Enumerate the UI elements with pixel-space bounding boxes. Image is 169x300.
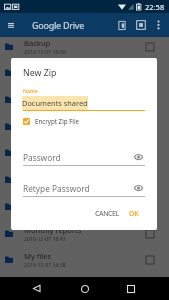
staticText: Retype Password <box>23 183 90 194</box>
button[interactable]: Select all <box>131 13 150 37</box>
staticText: Name <box>23 87 38 94</box>
staticText: 2016-12-07 16:38 <box>24 261 66 268</box>
staticText: Encrypt Zip File <box>35 117 80 125</box>
staticText: Google Drive <box>32 19 85 31</box>
button[interactable]: Select item <box>144 41 156 53</box>
button[interactable]: Select item <box>144 254 156 266</box>
button[interactable]: My files <box>0 246 169 273</box>
staticText: CANCEL <box>95 209 119 217</box>
button[interactable]: Select item <box>144 228 156 240</box>
button[interactable]: Home <box>75 277 95 300</box>
button[interactable]: Receipts <box>0 193 169 220</box>
staticText: 2016-12-07 16:50 <box>24 48 66 55</box>
staticText: 2016-12-07 16:44 <box>24 181 66 188</box>
staticText: My files <box>24 251 52 261</box>
button[interactable]: Documents shared <box>0 59 169 86</box>
button[interactable]: Show password <box>132 182 144 194</box>
staticText: 2016-12-07 16:48 <box>24 74 66 81</box>
staticText: Photos <box>24 118 49 128</box>
button[interactable]: Encrypt Zip File <box>23 116 80 126</box>
staticText: New Zip <box>23 67 57 79</box>
staticText: Monthly reports <box>24 225 82 235</box>
button[interactable]: New document <box>112 13 131 37</box>
button[interactable]: Backup <box>0 33 169 60</box>
staticText: 2016-12-07 16:47 <box>24 101 66 108</box>
button[interactable]: Back <box>26 277 46 300</box>
staticText: Backup <box>24 38 51 48</box>
button[interactable]: Projects <box>0 166 169 193</box>
button[interactable]: Monthly reports <box>0 220 169 247</box>
button[interactable]: CANCEL <box>91 205 123 221</box>
staticText: Documents shared <box>22 98 88 108</box>
button[interactable]: Invoices <box>0 86 169 113</box>
staticText: OK <box>129 209 139 217</box>
staticText: 2016-12-07 16:43 <box>24 235 66 242</box>
button[interactable]: OK <box>125 205 143 221</box>
staticText: 22:58 <box>145 2 165 12</box>
staticText: Invoices <box>24 91 54 101</box>
button[interactable]: Show password <box>132 151 144 163</box>
staticText: Password <box>23 152 61 163</box>
staticText: Documents shared <box>24 64 92 74</box>
button[interactable]: Open navigation drawer <box>0 13 22 37</box>
button[interactable]: Recent apps <box>121 277 141 300</box>
staticText: 2016-12-07 16:45 <box>24 154 66 161</box>
button[interactable]: More options <box>150 13 166 37</box>
button[interactable]: Photos <box>0 113 169 140</box>
button[interactable]: Presentations <box>0 139 169 166</box>
